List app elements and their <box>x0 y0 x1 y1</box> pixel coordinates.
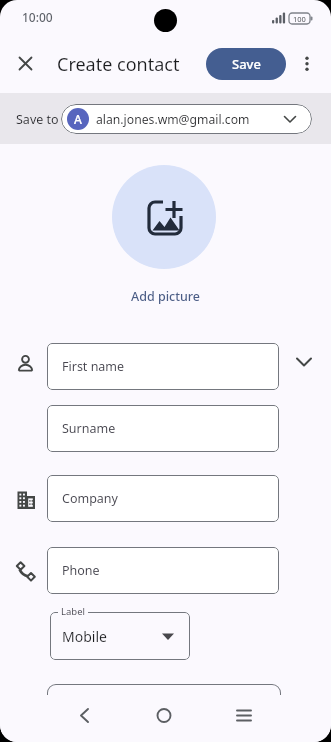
button[interactable] <box>228 699 260 731</box>
button[interactable]: Add picture <box>0 286 331 306</box>
staticText: Add picture <box>131 288 201 305</box>
staticText: First name <box>62 358 125 375</box>
staticText: alan.jones.wm@gmail.com <box>96 111 250 128</box>
button[interactable] <box>13 51 39 77</box>
button[interactable] <box>295 52 319 76</box>
staticText: A <box>74 111 82 127</box>
staticText: Company <box>62 490 118 507</box>
button[interactable] <box>68 699 100 731</box>
button[interactable]: Mobile <box>50 612 190 660</box>
button[interactable]: A <box>61 104 312 134</box>
button[interactable]: Phone <box>47 547 279 594</box>
staticText: Surname <box>62 420 116 437</box>
staticText: Label <box>61 605 85 618</box>
button[interactable]: First name <box>47 343 279 390</box>
button[interactable]: Save <box>206 48 286 80</box>
staticText: Save <box>232 55 261 73</box>
staticText: Phone <box>62 562 100 579</box>
button[interactable] <box>112 165 216 269</box>
staticText: 10:00 <box>22 9 53 25</box>
button[interactable]: Company <box>47 475 279 522</box>
staticText: Mobile <box>62 627 107 646</box>
staticText: 100 <box>293 14 306 24</box>
staticText: Save to <box>16 111 59 128</box>
button[interactable] <box>148 699 180 731</box>
button[interactable]: Surname <box>47 405 279 452</box>
staticText: Create contact <box>57 52 180 77</box>
